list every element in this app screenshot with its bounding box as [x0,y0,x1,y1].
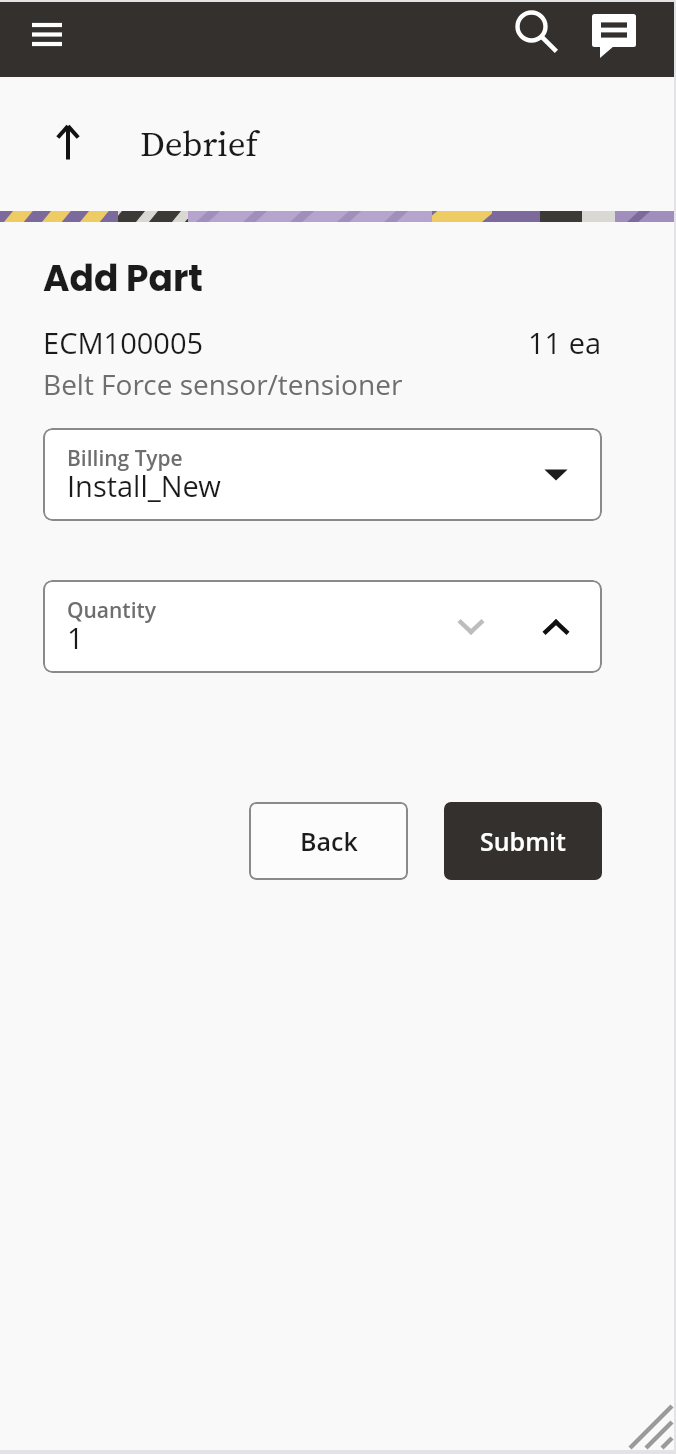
button[interactable]: Messages [578,2,648,72]
button[interactable]: Open Billing Type options [533,452,579,498]
staticText: Submit [480,824,566,858]
button[interactable]: Submit [444,802,602,880]
staticText: ECM100005 [43,323,204,362]
button[interactable]: Back [249,802,408,880]
staticText: Install_New [67,466,221,505]
staticText: Billing Type [67,444,183,473]
staticText: 11 ea [528,323,602,362]
button[interactable]: Quantity [43,580,602,673]
staticText: Add Part [43,253,203,303]
button[interactable]: Decrease quantity [446,602,496,652]
staticText: Quantity [67,596,156,625]
button[interactable]: Open navigation menu [17,9,77,69]
button[interactable]: Search [502,2,572,72]
button[interactable]: Navigate up [47,121,89,163]
staticText: 1 [67,618,84,657]
staticText: Belt Force sensor/tensioner [43,365,403,403]
button[interactable]: Increase quantity [531,602,581,652]
staticText: Debrief [140,120,258,168]
button[interactable]: Billing Type [43,428,602,521]
staticText: Back [300,824,358,858]
